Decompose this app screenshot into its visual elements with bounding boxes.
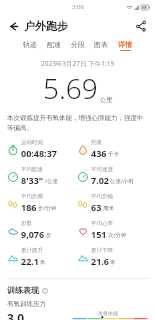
button[interactable]: 配速 <box>46 38 62 53</box>
staticText: 户外跑步 <box>24 19 68 33</box>
staticText: 热量 <box>91 139 102 146</box>
staticText: 22.1 <box>21 255 39 267</box>
button[interactable]: 分段 <box>70 38 86 53</box>
staticText: 步/分钟 <box>38 204 57 212</box>
button[interactable]: 分享 <box>132 17 150 35</box>
staticText: 63 <box>91 201 102 213</box>
staticText: 436 <box>91 147 107 159</box>
staticText: 本次锻炼提升有氧体能，增强心肺能力，强度中等偏高。 <box>7 114 148 132</box>
button[interactable]: 图表 <box>93 38 109 53</box>
staticText: 公里 <box>100 96 112 104</box>
staticText: 步 <box>46 232 52 239</box>
staticText: 米 <box>40 259 46 266</box>
staticText: 运动时间 <box>21 139 43 146</box>
staticText: 配速 <box>47 40 61 49</box>
staticText: 5.69 <box>43 69 98 107</box>
staticText: 9,076 <box>21 228 45 240</box>
staticText: 00:48:37 <box>21 147 57 159</box>
staticText: 改善体能 <box>98 310 118 316</box>
staticText: 7.02 <box>91 174 109 186</box>
staticText: 2023年3月27日 下午1:19 <box>41 59 115 68</box>
staticText: 训练表现 <box>7 285 39 295</box>
staticText: 累计爬升 <box>21 247 43 254</box>
staticText: 151 <box>91 228 107 240</box>
staticText: 次/分钟 <box>108 231 127 239</box>
staticText: 累计下降 <box>91 247 113 254</box>
staticText: 3:06 <box>72 3 84 11</box>
staticText: 公里/小时 <box>110 177 135 185</box>
button[interactable]: 返回 <box>4 17 22 35</box>
staticText: 8'33" <box>21 174 44 186</box>
staticText: 分段 <box>71 40 85 49</box>
staticText: 详情 <box>118 40 132 49</box>
staticText: 有氧训练压力 <box>7 300 46 308</box>
staticText: 平均配速 <box>21 166 43 173</box>
staticText: 步数 <box>21 220 32 227</box>
staticText: 平均步幅 <box>91 193 113 200</box>
staticText: 平均速度 <box>91 166 113 173</box>
staticText: 21.6 <box>91 255 109 267</box>
button[interactable]: 轨迹 <box>22 38 38 53</box>
button[interactable]: 详情 <box>117 38 133 53</box>
staticText: 米 <box>110 259 116 266</box>
button[interactable]: 说明 <box>41 287 48 294</box>
staticText: 厘米 <box>103 205 114 212</box>
staticText: 千卡 <box>108 151 119 158</box>
staticText: 轨迹 <box>23 40 37 49</box>
staticText: 186 <box>21 201 37 213</box>
staticText: 平均步频 <box>21 193 43 200</box>
staticText: 3.0 <box>7 310 25 320</box>
staticText: 平均心率 <box>91 220 113 227</box>
staticText: /公里 <box>45 177 59 185</box>
staticText: 图表 <box>94 40 108 49</box>
